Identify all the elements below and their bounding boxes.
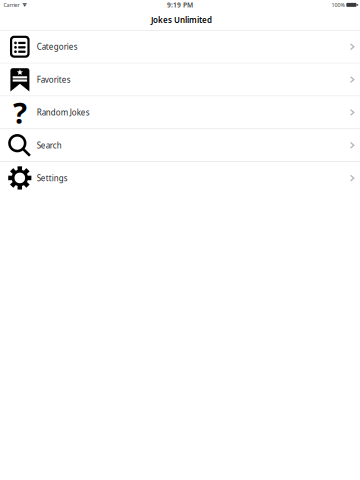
- staticText: Categories: [37, 41, 78, 52]
- staticText: 9:19 PM: [167, 1, 193, 9]
- staticText: Jokes Unlimited: [151, 15, 212, 25]
- staticText: Settings: [37, 173, 68, 183]
- button[interactable]: Favorites: [0, 63, 360, 96]
- button[interactable]: Settings: [0, 162, 360, 194]
- staticText: Carrier: [4, 1, 20, 9]
- staticText: Favorites: [37, 74, 71, 85]
- button[interactable]: ?: [0, 96, 360, 128]
- button[interactable]: Search: [0, 129, 360, 161]
- staticText: Random Jokes: [37, 107, 90, 118]
- staticText: Search: [37, 140, 62, 151]
- staticText: ?: [13, 93, 27, 132]
- button[interactable]: Categories: [0, 31, 360, 63]
- staticText: 100%: [331, 1, 344, 9]
